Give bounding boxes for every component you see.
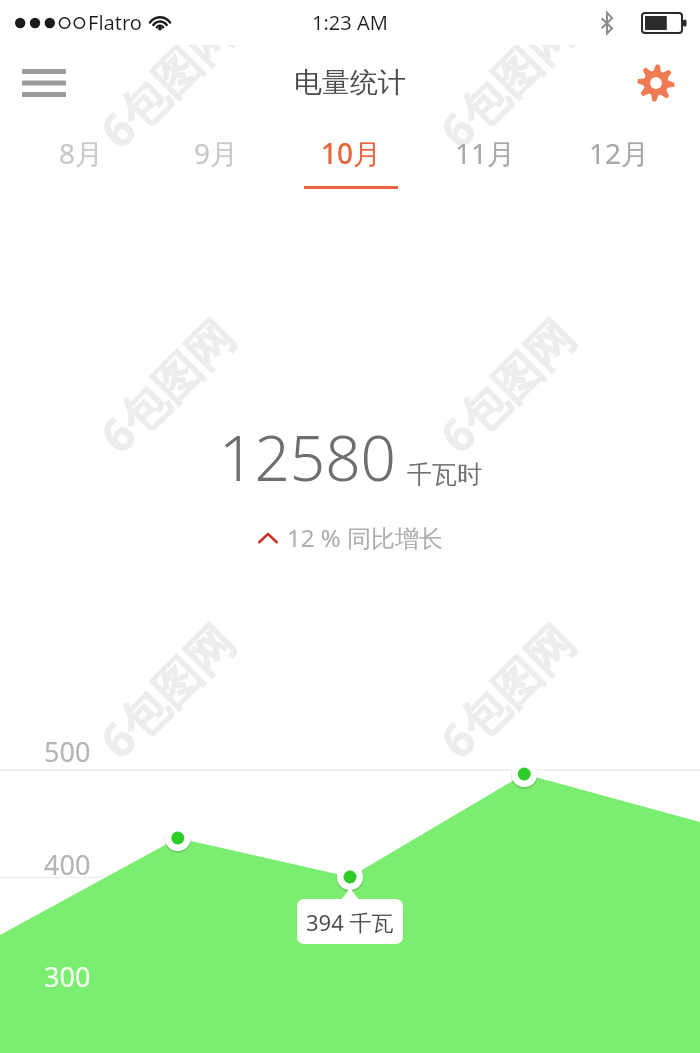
staticText: 6包图网 — [86, 610, 247, 771]
staticText: 10月 — [321, 134, 382, 172]
staticText: 8月 — [59, 134, 104, 172]
button[interactable]: Menu — [10, 49, 78, 117]
button[interactable]: 8月 — [14, 120, 149, 200]
staticText: 12580 — [219, 415, 397, 499]
staticText: 6包图网 — [426, 610, 587, 771]
staticText: 6包图网 — [426, 0, 587, 161]
staticText: 12 % 同比增长 — [287, 521, 443, 554]
staticText: 6包图网 — [86, 0, 247, 161]
staticText: 394 千瓦 — [306, 907, 394, 937]
button[interactable]: 10月 — [284, 120, 418, 200]
staticText: 300 — [44, 958, 91, 995]
staticText: 400 — [44, 846, 91, 883]
staticText: Flatro — [88, 9, 142, 36]
staticText: 11月 — [455, 134, 516, 172]
button[interactable]: 12月 — [552, 120, 686, 200]
button[interactable]: 9月 — [149, 120, 284, 200]
staticText: 千瓦时 — [407, 459, 482, 490]
staticText: 500 — [44, 733, 91, 770]
staticText: 1:23 AM — [312, 9, 388, 36]
button[interactable]: Settings — [624, 51, 688, 115]
button[interactable]: 11月 — [418, 120, 552, 200]
staticText: 6包图网 — [86, 305, 247, 466]
button[interactable]: 394 千瓦 — [297, 899, 403, 944]
staticText: 6包图网 — [86, 915, 247, 1053]
staticText: 9月 — [194, 134, 239, 172]
staticText: 电量统计 — [294, 65, 406, 100]
staticText: 6包图网 — [426, 305, 587, 466]
staticText: 12月 — [589, 134, 650, 172]
